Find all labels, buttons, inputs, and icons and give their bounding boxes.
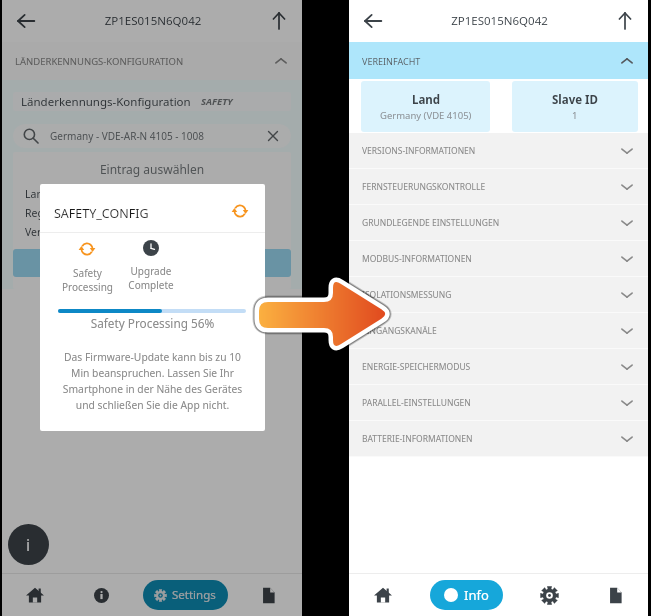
staticText: Upgrade Complete <box>128 264 174 292</box>
staticText: LÄNDERKENNUNGS-KONFIGURATION <box>15 55 273 68</box>
staticText: Safety Processing 56% <box>40 315 265 331</box>
button[interactable]: Back <box>15 10 37 32</box>
staticText: ZP1ES015N6Q042 <box>384 13 615 29</box>
staticText: ZP1ES015N6Q042 <box>37 13 269 29</box>
button[interactable]: LÄNDERKENNUNGS-KONFIGURATION <box>2 42 302 80</box>
button[interactable]: MODBUS-INFORMATIONEN <box>349 241 648 277</box>
staticText: SAFETY <box>201 95 233 108</box>
staticText: VERSIONS-INFORMATIONEN <box>362 145 619 157</box>
staticText: BATTERIE-INFORMATIONEN <box>362 433 619 445</box>
staticText: Germany (VDE 4105) <box>380 109 472 122</box>
button[interactable]: GRUNDLEGENDE EINSTELLUNGEN <box>349 205 648 241</box>
button[interactable]: ENERGIE-SPEICHERMODUS <box>349 349 648 385</box>
staticText: MODBUS-INFORMATIONEN <box>362 253 619 265</box>
button[interactable]: Back <box>362 10 384 32</box>
staticText: Land <box>412 92 441 108</box>
staticText: Länderkennungs-Konfiguration <box>21 94 191 110</box>
staticText: GRUNDLEGENDE EINSTELLUNGEN <box>362 217 619 229</box>
button[interactable]: Slave ID <box>512 81 638 132</box>
staticText: Regel <box>25 206 53 220</box>
staticText: Settings <box>172 587 216 603</box>
staticText: Safety Processing <box>62 266 113 294</box>
staticText: Das Firmware-Update kann bis zu 10 Min b… <box>54 350 251 412</box>
button[interactable]: FERNSTEUERUNGSKONTROLLE <box>349 169 648 205</box>
button[interactable]: Refresh <box>231 202 249 220</box>
button[interactable]: VEREINFACHT <box>349 42 648 79</box>
staticText: EINGANGSKANÄLE <box>362 325 619 337</box>
button[interactable]: EINGANGSKANÄLE <box>349 313 648 349</box>
button[interactable]: Info <box>68 574 135 616</box>
staticText: i <box>26 534 31 556</box>
button[interactable]: Upload <box>615 11 635 31</box>
staticText: Version <box>25 225 62 239</box>
button[interactable]: Land <box>361 81 490 132</box>
staticText: Germany - VDE-AR-N 4105 - 1008 <box>50 129 266 143</box>
button[interactable]: Settings <box>143 580 228 610</box>
button[interactable] <box>13 249 291 277</box>
button[interactable]: ISOLATIONSMESSUNG <box>349 277 648 313</box>
staticText: Land <box>25 187 50 201</box>
button[interactable]: Home <box>349 574 416 616</box>
button[interactable]: PARALLEL-EINSTELLUNGEN <box>349 385 648 421</box>
staticText: PARALLEL-EINSTELLUNGEN <box>362 397 619 409</box>
button[interactable]: VERSIONS-INFORMATIONEN <box>349 133 648 169</box>
staticText: Slave ID <box>552 92 598 108</box>
staticText: 1 <box>572 109 578 122</box>
button[interactable]: BATTERIE-INFORMATIONEN <box>349 421 648 457</box>
staticText: Eintrag auswählen <box>13 161 291 177</box>
button[interactable]: Home <box>2 574 68 616</box>
staticText: ISOLATIONSMESSUNG <box>362 289 619 301</box>
button[interactable]: Documents <box>235 574 302 616</box>
staticText: FERNSTEUERUNGSKONTROLLE <box>362 181 619 193</box>
staticText: VEREINFACHT <box>362 55 619 67</box>
staticText: Info <box>464 586 489 604</box>
staticText: SAFETY_CONFIG <box>54 205 231 222</box>
button[interactable]: Settings <box>516 574 582 616</box>
button[interactable]: Upload <box>269 11 289 31</box>
button[interactable]: Germany - VDE-AR-N 4105 - 1008 <box>13 124 291 148</box>
button[interactable]: Info <box>8 524 49 565</box>
button[interactable]: Documents <box>582 574 648 616</box>
button[interactable]: Info <box>430 580 503 610</box>
staticText: ENERGIE-SPEICHERMODUS <box>362 361 619 373</box>
